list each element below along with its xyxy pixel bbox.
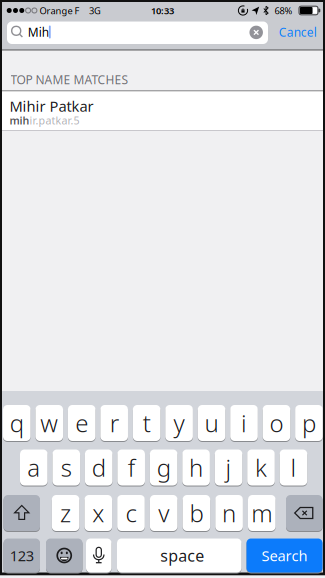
- button[interactable]: r: [100, 405, 128, 441]
- staticText: TOP NAME MATCHES: [10, 71, 128, 87]
- button[interactable]: c: [117, 495, 145, 531]
- staticText: f: [128, 452, 135, 483]
- button[interactable]: u: [198, 405, 225, 441]
- button[interactable]: s: [52, 449, 80, 485]
- staticText: m: [251, 497, 272, 529]
- button[interactable]: w: [35, 405, 63, 441]
- staticText: a: [27, 452, 40, 483]
- button[interactable]: h: [182, 449, 210, 485]
- staticText: b: [189, 497, 203, 529]
- button[interactable]: Mihir Patkar: [2, 91, 323, 130]
- staticText: g: [157, 452, 171, 483]
- button[interactable]: z: [52, 495, 79, 531]
- button[interactable]: j: [215, 449, 242, 485]
- staticText: Cancel: [279, 24, 317, 40]
- button[interactable]: x: [84, 495, 112, 531]
- staticText: u: [205, 407, 219, 439]
- button[interactable]: space: [117, 538, 241, 572]
- staticText: t: [143, 407, 151, 439]
- staticText: Mih: [28, 24, 49, 40]
- button[interactable]: d: [85, 449, 112, 485]
- button[interactable]: Clear text: [249, 26, 263, 39]
- staticText: l: [290, 452, 296, 483]
- button[interactable]: i: [230, 405, 258, 441]
- staticText: c: [125, 497, 136, 529]
- button[interactable]: y: [165, 405, 193, 441]
- button[interactable]: b: [183, 495, 210, 531]
- button[interactable]: l: [280, 449, 307, 485]
- staticText: n: [222, 497, 236, 529]
- staticText: s: [61, 452, 72, 483]
- button[interactable]: Emoji: [46, 538, 82, 572]
- staticText: r: [110, 407, 119, 439]
- button[interactable]: Dictation: [86, 538, 111, 572]
- staticText: h: [189, 452, 203, 483]
- button[interactable]: n: [215, 495, 243, 531]
- staticText: ir.patkar.5: [29, 113, 79, 127]
- staticText: 68%: [274, 4, 292, 17]
- button[interactable]: g: [150, 449, 177, 485]
- staticText: space: [160, 545, 204, 566]
- button[interactable]: Shift: [3, 495, 40, 531]
- staticText: Search: [261, 546, 307, 565]
- button[interactable]: t: [133, 405, 160, 441]
- staticText: v: [158, 497, 169, 529]
- button[interactable]: q: [3, 405, 31, 441]
- button[interactable]: Delete: [286, 495, 322, 531]
- staticText: y: [174, 407, 185, 439]
- staticText: o: [269, 407, 283, 439]
- button[interactable]: Numbers: [3, 538, 40, 572]
- button[interactable]: Cancel: [279, 24, 317, 40]
- staticText: 123: [10, 546, 34, 565]
- staticText: Mihir Patkar: [9, 96, 93, 116]
- staticText: k: [255, 452, 267, 483]
- button[interactable]: k: [247, 449, 275, 485]
- staticText: d: [92, 452, 106, 483]
- staticText: j: [226, 452, 232, 483]
- button[interactable]: f: [117, 449, 145, 485]
- staticText: w: [40, 407, 58, 439]
- button[interactable]: m: [248, 495, 276, 531]
- staticText: 10:33: [151, 4, 174, 17]
- staticText: p: [302, 407, 316, 439]
- staticText: x: [92, 497, 104, 529]
- staticText: 3G: [89, 4, 101, 17]
- staticText: i: [241, 407, 247, 439]
- button[interactable]: a: [20, 449, 48, 485]
- staticText: e: [75, 407, 88, 439]
- button[interactable]: e: [68, 405, 95, 441]
- button[interactable]: o: [263, 405, 290, 441]
- button[interactable]: v: [150, 495, 177, 531]
- staticText: mih: [9, 113, 29, 127]
- staticText: z: [60, 497, 71, 529]
- button[interactable]: p: [295, 405, 323, 441]
- staticText: q: [10, 407, 24, 439]
- button[interactable]: Search: [246, 538, 322, 572]
- staticText: Orange F: [40, 4, 80, 17]
